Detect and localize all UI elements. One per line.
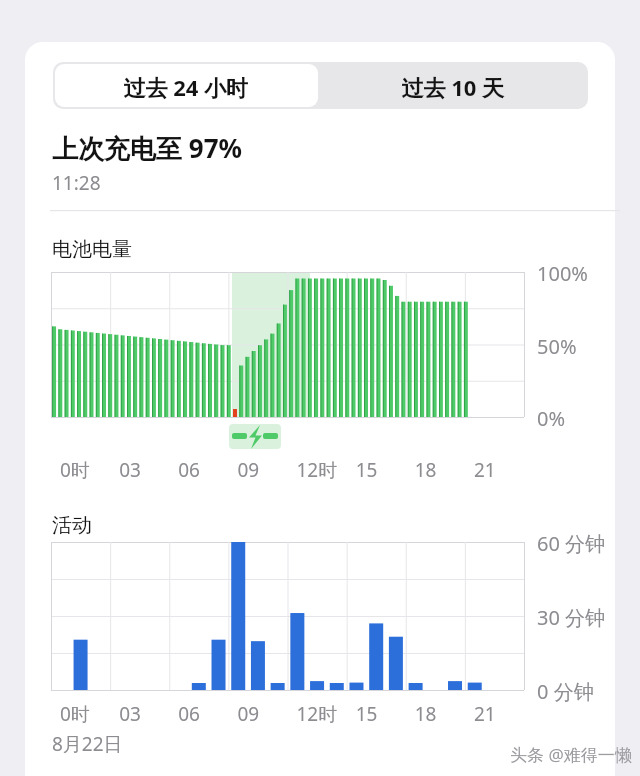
button[interactable]: 过去 24 小时 — [55, 64, 318, 107]
button[interactable]: 过去 10 天 — [320, 64, 586, 107]
